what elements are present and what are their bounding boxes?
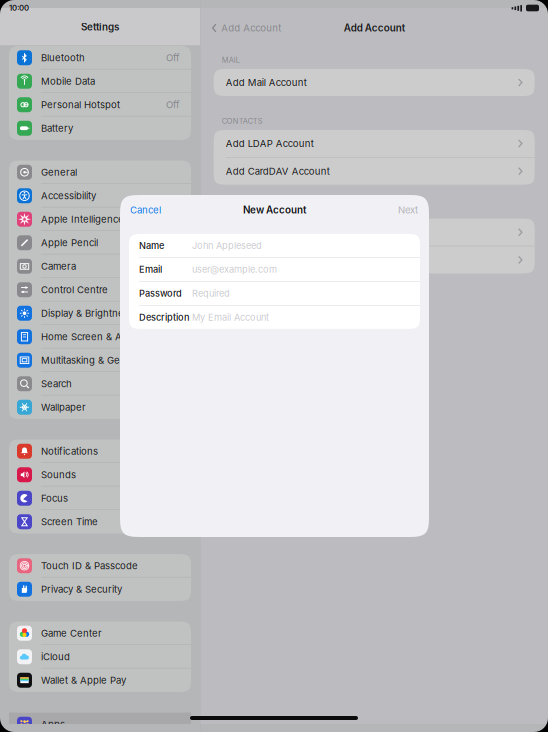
staticText: John Appleseed bbox=[192, 240, 262, 251]
button[interactable]: General bbox=[9, 160, 191, 184]
staticText: Off bbox=[166, 99, 180, 110]
staticText: Accessibility bbox=[41, 190, 96, 201]
staticText: 10:00 bbox=[9, 3, 29, 13]
staticText: Focus bbox=[41, 492, 68, 504]
button[interactable]: Cancel bbox=[120, 200, 171, 220]
button[interactable]: Accessibility bbox=[9, 184, 191, 207]
staticText: Next bbox=[398, 204, 418, 216]
staticText: Add LDAP Account bbox=[226, 138, 314, 149]
staticText: Name bbox=[139, 240, 164, 251]
staticText: Add Subscribed Calendar bbox=[226, 254, 344, 266]
staticText: Touch ID & Passcode bbox=[41, 560, 138, 571]
staticText: Privacy & Security bbox=[41, 583, 122, 595]
staticText: Add Account bbox=[221, 22, 281, 34]
staticText: CALENDARS bbox=[222, 205, 266, 214]
button[interactable]: Control Centre bbox=[9, 278, 191, 301]
button[interactable]: Battery bbox=[9, 116, 191, 140]
staticText: Notifications bbox=[41, 445, 98, 457]
staticText: Control Centre bbox=[41, 284, 108, 295]
button[interactable]: Add LDAP Account bbox=[214, 130, 535, 157]
button[interactable]: Personal Hotspot bbox=[9, 93, 191, 116]
staticText: Screen Time bbox=[41, 516, 98, 527]
staticText: Apple Intelligence & Siri bbox=[41, 213, 150, 225]
staticText: Personal Hotspot bbox=[41, 99, 120, 110]
staticText: Display & Brightness bbox=[41, 307, 134, 319]
button[interactable]: Wallet & Apple Pay bbox=[9, 668, 191, 692]
button[interactable]: Apps bbox=[9, 712, 191, 732]
staticText: Password bbox=[139, 288, 182, 299]
staticText: iCloud bbox=[41, 651, 70, 662]
staticText: New Account bbox=[243, 204, 306, 216]
button[interactable]: Next bbox=[387, 200, 429, 220]
staticText: Search bbox=[41, 378, 72, 389]
button[interactable]: iCloud bbox=[9, 645, 191, 668]
staticText: Bluetooth bbox=[41, 52, 85, 63]
button[interactable]: Add CardDAV Account bbox=[214, 158, 535, 185]
button[interactable]: Touch ID & Passcode bbox=[9, 554, 191, 577]
staticText: Cancel bbox=[130, 204, 161, 216]
button[interactable]: Display & Brightness bbox=[9, 301, 191, 325]
button[interactable]: Apple Intelligence & Siri bbox=[9, 207, 191, 231]
staticText: Description bbox=[139, 312, 190, 323]
staticText: My Email Account bbox=[192, 312, 269, 323]
staticText: Camera bbox=[41, 260, 76, 272]
staticText: Add CalDAV Account bbox=[226, 226, 323, 238]
button[interactable]: Add Subscribed Calendar bbox=[214, 246, 535, 273]
staticText: user@example.com bbox=[192, 264, 277, 275]
staticText: Apps bbox=[41, 718, 65, 730]
staticText: Battery bbox=[41, 122, 73, 134]
staticText: Sounds bbox=[41, 469, 76, 480]
button[interactable]: Mobile Data bbox=[9, 69, 191, 93]
staticText: Wallpaper bbox=[41, 401, 86, 413]
staticText: General bbox=[41, 166, 77, 178]
button[interactable]: Screen Time bbox=[9, 510, 191, 533]
staticText: Settings bbox=[81, 21, 119, 33]
staticText: CONTACTS bbox=[222, 116, 263, 125]
button[interactable]: Wallpaper bbox=[9, 395, 191, 419]
staticText: Off bbox=[166, 52, 180, 63]
button[interactable]: Home Screen & App Library bbox=[9, 325, 191, 348]
staticText: Required bbox=[192, 288, 230, 299]
staticText: Game Center bbox=[41, 627, 102, 639]
staticText: Home Screen & App Library bbox=[41, 331, 168, 342]
button[interactable]: Sounds bbox=[9, 463, 191, 486]
button[interactable]: Notifications bbox=[9, 439, 191, 463]
button[interactable]: Add Mail Account bbox=[214, 69, 535, 96]
staticText: Wallet & Apple Pay bbox=[41, 674, 126, 686]
staticText: Email bbox=[139, 264, 162, 275]
staticText: Add Account bbox=[344, 22, 405, 34]
button[interactable]: Multitasking & Gestures bbox=[9, 348, 191, 372]
staticText: Add CardDAV Account bbox=[226, 165, 330, 177]
button[interactable]: Add Account bbox=[201, 19, 281, 37]
staticText: MAIL bbox=[222, 55, 240, 64]
button[interactable]: Search bbox=[9, 372, 191, 395]
button[interactable]: Add CalDAV Account bbox=[214, 219, 535, 246]
button[interactable]: Apple Pencil bbox=[9, 231, 191, 254]
button[interactable]: Camera bbox=[9, 254, 191, 278]
staticText: Add Mail Account bbox=[226, 77, 307, 88]
button[interactable]: Focus bbox=[9, 486, 191, 510]
button[interactable]: Bluetooth bbox=[9, 46, 191, 69]
button[interactable]: Privacy & Security bbox=[9, 577, 191, 601]
staticText: Multitasking & Gestures bbox=[41, 354, 148, 366]
staticText: Apple Pencil bbox=[41, 237, 98, 248]
staticText: Mobile Data bbox=[41, 75, 95, 87]
button[interactable]: Game Center bbox=[9, 621, 191, 645]
